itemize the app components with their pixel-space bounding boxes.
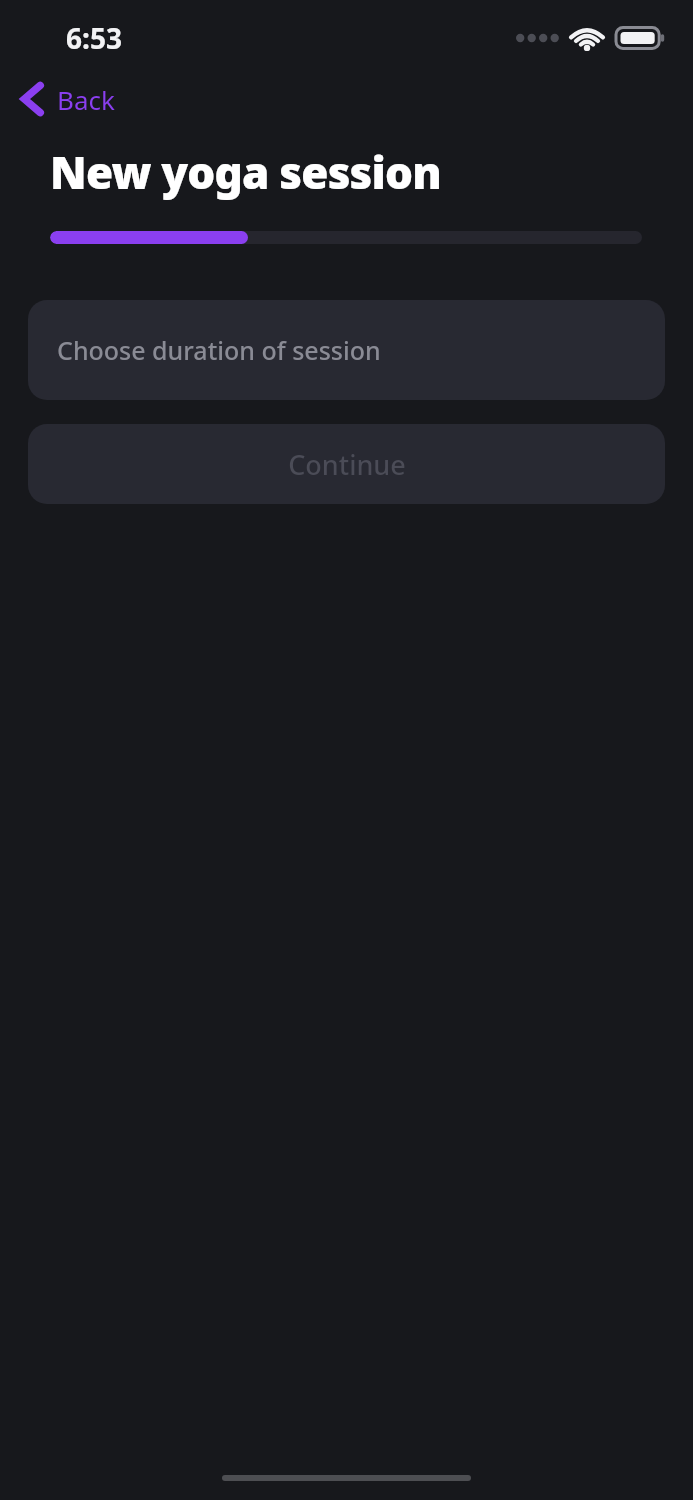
button[interactable]: Back — [14, 72, 129, 126]
staticText: Back — [57, 82, 115, 117]
button[interactable]: Continue — [28, 424, 665, 504]
staticText: Choose duration of session — [57, 333, 381, 367]
button[interactable]: Choose duration of session — [28, 300, 665, 400]
staticText: Continue — [288, 446, 406, 483]
staticText: 6:53 — [66, 19, 122, 57]
staticText: New yoga session — [50, 142, 441, 202]
